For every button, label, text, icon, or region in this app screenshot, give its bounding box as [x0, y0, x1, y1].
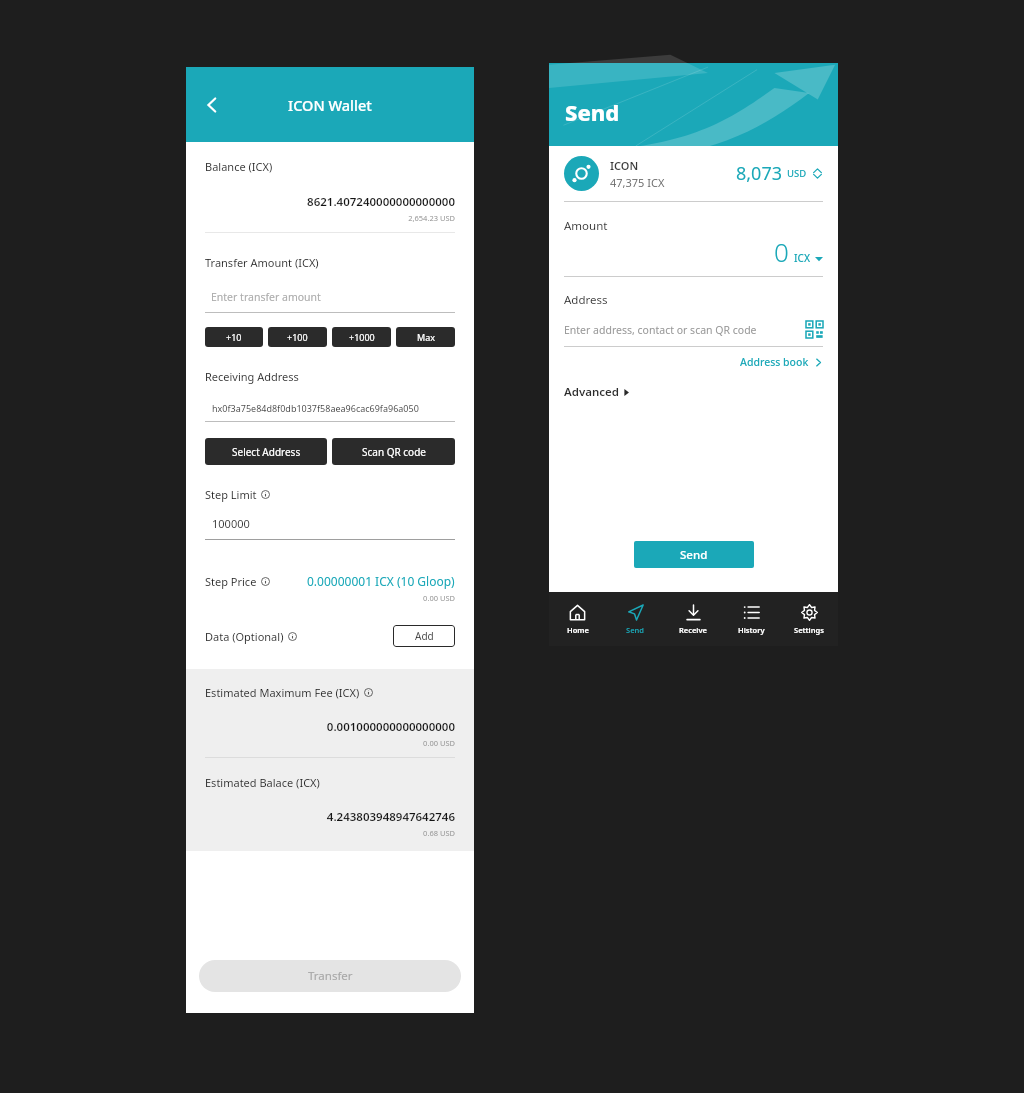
button[interactable]: Select Address — [205, 438, 327, 465]
staticText: +100 — [287, 331, 308, 343]
button[interactable]: Scan QR code — [806, 321, 823, 338]
staticText: Send — [626, 625, 644, 635]
button[interactable]: 0 — [564, 234, 823, 269]
button[interactable]: Address book — [740, 355, 823, 369]
staticText: 0.001000000000000000 — [186, 719, 455, 735]
staticText: Receiving Address — [205, 369, 299, 384]
staticText: 100000 — [212, 516, 250, 531]
staticText: Settings — [794, 625, 824, 635]
staticText: Address book — [740, 355, 809, 369]
staticText: Home — [567, 625, 589, 635]
staticText: Receive — [679, 625, 707, 635]
staticText: Select Address — [232, 445, 301, 459]
button[interactable]: +100 — [268, 327, 327, 347]
button[interactable]: Enter address, contact or scan QR code — [564, 321, 823, 338]
staticText: Balance (ICX) — [205, 159, 273, 174]
button[interactable]: Send — [606, 592, 664, 646]
staticText: Enter address, contact or scan QR code — [564, 323, 757, 337]
staticText: Scan QR code — [362, 445, 426, 459]
button[interactable]: ICON — [564, 156, 823, 191]
button[interactable]: Add — [393, 625, 455, 647]
staticText: USD — [787, 167, 807, 180]
staticText: ICX — [794, 251, 810, 265]
button[interactable]: Receive — [664, 592, 722, 646]
staticText: Max — [417, 331, 435, 343]
staticText: 0.00 USD — [186, 593, 455, 603]
staticText: +10 — [226, 331, 242, 343]
staticText: Step Price — [205, 574, 257, 589]
staticText: Transfer — [308, 968, 353, 984]
staticText: 8,073 — [736, 161, 783, 186]
button[interactable]: hx0f3a75e84d8f0db1037f58aea96cac69fa96a0… — [205, 402, 455, 422]
staticText: Send — [680, 547, 708, 563]
button[interactable]: Scan QR code — [332, 438, 455, 465]
staticText: 2,654.23 USD — [186, 213, 455, 223]
button[interactable]: 100000 — [205, 516, 455, 540]
staticText: 0 — [774, 234, 789, 269]
staticText: +1000 — [349, 331, 375, 343]
button[interactable]: Settings — [780, 592, 838, 646]
staticText: ICON Wallet — [288, 95, 372, 115]
staticText: 0.68 USD — [186, 828, 455, 838]
staticText: Amount — [564, 218, 608, 234]
button[interactable]: Advanced — [564, 384, 630, 400]
staticText: 0.00 USD — [186, 738, 455, 748]
staticText: Send — [565, 97, 620, 127]
staticText: ICON — [610, 158, 639, 173]
staticText: 47,375 ICX — [610, 175, 665, 190]
staticText: Address — [564, 292, 608, 308]
button[interactable]: Max — [396, 327, 455, 347]
button[interactable]: Home — [549, 592, 606, 646]
staticText: hx0f3a75e84d8f0db1037f58aea96cac69fa96a0… — [212, 402, 419, 414]
button[interactable]: +10 — [205, 327, 263, 347]
staticText: Enter transfer amount — [211, 290, 321, 304]
button[interactable]: Send — [634, 541, 754, 568]
staticText: Estimated Maximum Fee (ICX) — [205, 685, 360, 700]
staticText: Estimated Balace (ICX) — [205, 775, 320, 790]
button[interactable]: Enter transfer amount — [205, 290, 455, 313]
button[interactable]: Back — [192, 85, 232, 125]
staticText: Advanced — [564, 384, 619, 400]
staticText: Transfer Amount (ICX) — [205, 255, 319, 270]
staticText: 0.00000001 ICX (10 Gloop) — [307, 573, 455, 589]
staticText: 4.243803948947642746 — [186, 809, 455, 825]
button[interactable]: History — [722, 592, 780, 646]
button[interactable]: +1000 — [332, 327, 391, 347]
staticText: History — [738, 625, 765, 635]
staticText: Step Limit — [205, 487, 257, 502]
button[interactable]: Transfer — [199, 960, 461, 992]
staticText: Data (Optional) — [205, 629, 284, 644]
staticText: 8621.407240000000000000 — [186, 194, 455, 210]
staticText: Add — [415, 629, 434, 643]
